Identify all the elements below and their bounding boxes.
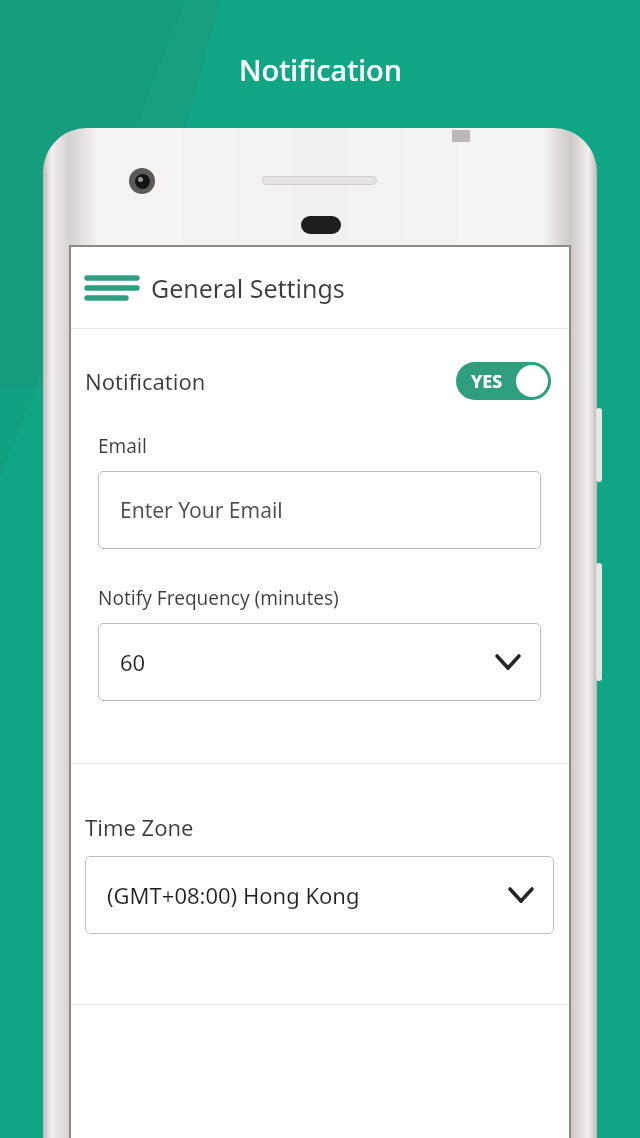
- staticText: YES: [471, 369, 503, 394]
- button[interactable]: 60: [98, 623, 541, 701]
- staticText: Notify Frequency (minutes): [98, 585, 339, 611]
- button[interactable]: Enter Your Email: [98, 471, 541, 549]
- staticText: (GMT+08:00) Hong Kong: [107, 880, 360, 910]
- staticText: Enter Your Email: [120, 496, 283, 525]
- staticText: Notification: [239, 50, 402, 89]
- button[interactable]: (GMT+08:00) Hong Kong: [85, 856, 554, 934]
- staticText: Email: [98, 433, 147, 459]
- staticText: Notification: [85, 366, 206, 396]
- staticText: General Settings: [151, 271, 345, 305]
- button[interactable]: Notification enabled: [456, 362, 551, 400]
- button[interactable]: Notification: [71, 329, 569, 433]
- button[interactable]: Open navigation menu: [83, 259, 141, 317]
- staticText: 60: [120, 647, 146, 677]
- staticText: Time Zone: [85, 812, 194, 842]
